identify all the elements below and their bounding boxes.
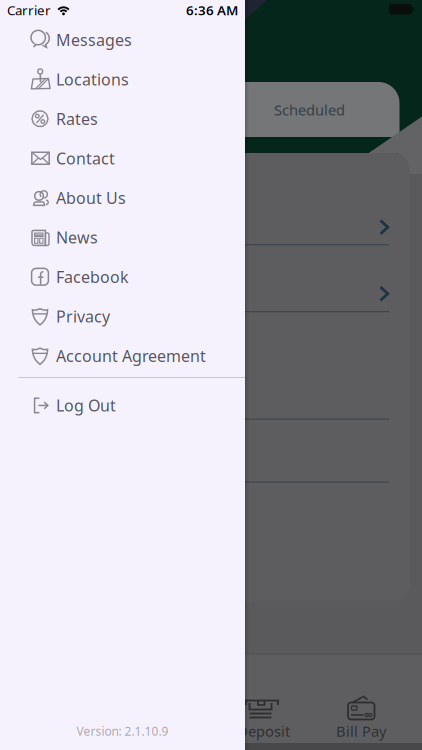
staticText: Locations	[56, 69, 129, 90]
staticText: Facebook	[56, 266, 129, 287]
staticText: Scheduled	[274, 100, 345, 120]
staticText: Privacy	[56, 306, 110, 327]
button[interactable]: Log Out	[0, 385, 245, 425]
button[interactable]: Messages	[0, 20, 245, 59]
button[interactable]: Privacy	[0, 296, 245, 336]
button[interactable]: Scheduled	[211, 82, 399, 137]
staticText: Rates	[56, 108, 98, 129]
staticText: News	[56, 227, 98, 248]
staticText: Carrier	[7, 1, 51, 19]
button[interactable]: Locations	[0, 59, 245, 99]
button[interactable]: News	[0, 217, 245, 257]
staticText: 6:36 AM	[186, 1, 238, 19]
staticText: Bill Pay	[336, 721, 386, 741]
staticText: Contact	[56, 148, 115, 169]
button[interactable]: Deposit	[211, 654, 316, 750]
staticText: About Us	[56, 187, 126, 208]
button[interactable]: About Us	[0, 178, 245, 217]
button[interactable]: Account Agreement	[0, 336, 245, 375]
button[interactable]: Bill Pay	[316, 654, 422, 750]
staticText: Log Out	[56, 395, 116, 416]
staticText: Account Agreement	[56, 345, 206, 366]
staticText: Deposit	[237, 721, 290, 741]
button[interactable]: Contact	[0, 138, 245, 178]
button[interactable]: Rates	[0, 99, 245, 138]
staticText: Messages	[56, 29, 132, 50]
staticText: Version: 2.1.10.9	[76, 723, 168, 739]
button[interactable]: Facebook	[0, 257, 245, 296]
